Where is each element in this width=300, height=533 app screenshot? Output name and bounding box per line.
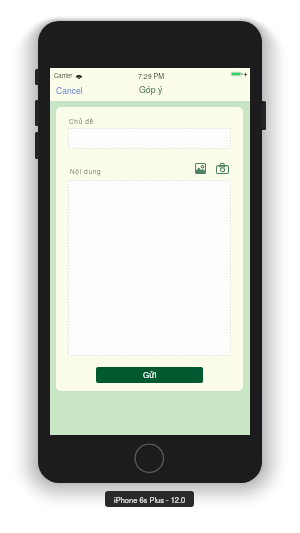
staticText: Gửi bbox=[143, 369, 157, 381]
button[interactable]: Cancel bbox=[52, 82, 87, 98]
staticText: iPhone 6s Plus - 12.0 bbox=[114, 494, 186, 505]
button[interactable]: iPhone 6s Plus - 12.0 bbox=[105, 491, 194, 507]
staticText: 7:29 PM bbox=[138, 71, 165, 81]
staticText: Góp ý bbox=[139, 83, 163, 96]
staticText: Chủ đề bbox=[69, 116, 94, 125]
staticText: Nội dung bbox=[70, 166, 102, 175]
button[interactable]: Gửi bbox=[96, 367, 203, 383]
staticText: Cancel bbox=[56, 84, 83, 96]
staticText: Carrier bbox=[54, 71, 73, 80]
button[interactable]: Take photo bbox=[216, 163, 229, 174]
button[interactable]: Choose photo bbox=[195, 163, 206, 174]
